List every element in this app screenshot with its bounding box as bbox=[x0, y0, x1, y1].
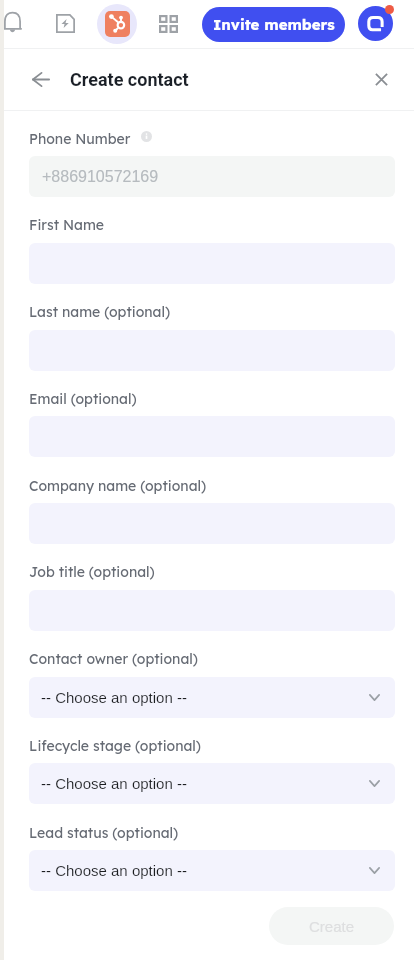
staticText: Lifecycle stage (optional) bbox=[29, 737, 201, 755]
button[interactable]: HubSpot bbox=[97, 4, 137, 44]
staticText: Email (optional) bbox=[29, 390, 137, 408]
button[interactable]: +886910572169 bbox=[29, 156, 395, 197]
staticText: +886910572169 bbox=[42, 168, 159, 186]
button[interactable]: Apps bbox=[153, 9, 184, 39]
button[interactable]: Notifications bbox=[0, 6, 28, 39]
staticText: Job title (optional) bbox=[29, 563, 155, 581]
staticText: Create bbox=[309, 918, 355, 935]
staticText: First Name bbox=[29, 216, 105, 234]
button[interactable]: Create bbox=[269, 907, 394, 945]
staticText: Lead status (optional) bbox=[29, 824, 179, 842]
button[interactable]: Quick create bbox=[50, 8, 81, 39]
staticText: Invite members bbox=[213, 15, 335, 34]
staticText: -- Choose an option -- bbox=[41, 689, 187, 706]
button[interactable]: -- Choose an option -- bbox=[29, 850, 395, 891]
button[interactable]: Back bbox=[25, 63, 57, 95]
button[interactable]: -- Choose an option -- bbox=[29, 763, 395, 804]
staticText: Last name (optional) bbox=[29, 303, 171, 321]
staticText: Phone Number bbox=[29, 130, 131, 148]
button[interactable]: Chat bbox=[358, 6, 393, 41]
button[interactable]: -- Choose an option -- bbox=[29, 677, 395, 718]
staticText: Create contact bbox=[70, 69, 189, 90]
staticText: -- Choose an option -- bbox=[41, 862, 187, 879]
staticText: Contact owner (optional) bbox=[29, 650, 198, 668]
button[interactable]: Close bbox=[365, 63, 397, 95]
button[interactable]: Invite members bbox=[202, 7, 345, 42]
staticText: -- Choose an option -- bbox=[41, 775, 187, 792]
staticText: Company name (optional) bbox=[29, 477, 207, 495]
